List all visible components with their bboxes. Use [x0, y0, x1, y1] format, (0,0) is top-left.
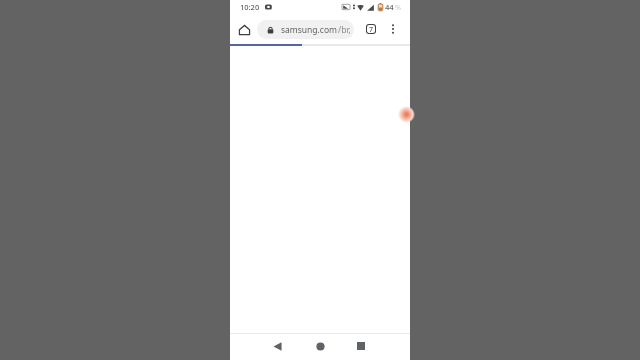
button[interactable]: Tabs [362, 20, 380, 38]
staticText: % [395, 2, 401, 12]
button[interactable]: Home [309, 335, 331, 357]
button[interactable]: Back [266, 335, 288, 357]
staticText: 10:20 [240, 2, 260, 12]
button[interactable]: Recent apps [350, 335, 372, 357]
staticText: /br, [338, 24, 351, 36]
button[interactable]: samsung.com [257, 20, 354, 39]
staticText: samsung.com [281, 24, 338, 36]
button[interactable]: More options [384, 20, 402, 38]
staticText: 44 [385, 2, 394, 12]
button[interactable]: Home [236, 21, 253, 38]
staticText: 7 [369, 25, 374, 33]
